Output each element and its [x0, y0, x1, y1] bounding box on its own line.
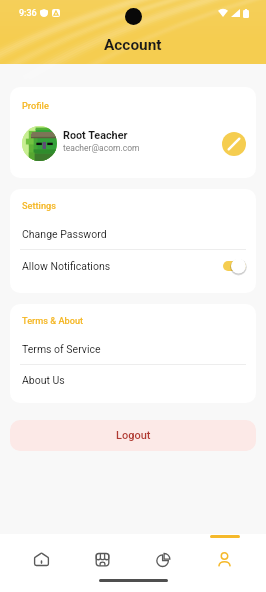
staticText: Settings [22, 200, 56, 211]
staticText: teacher@acorn.com [63, 143, 140, 153]
staticText: Change Password [22, 228, 107, 240]
button[interactable]: About Us [10, 365, 256, 395]
staticText: Terms of Service [22, 343, 101, 355]
button[interactable]: Change Password [10, 219, 256, 249]
button[interactable]: Home [11, 534, 72, 580]
staticText: Account [104, 36, 162, 54]
staticText: Root Teacher [63, 129, 128, 142]
staticText: Logout [116, 429, 151, 442]
staticText: About Us [22, 374, 65, 386]
button[interactable]: Account [194, 534, 255, 580]
staticText: Profile [22, 100, 49, 111]
button[interactable]: Edit profile [222, 132, 246, 156]
button[interactable]: Logout [10, 420, 256, 451]
button[interactable]: Allow Notifications [10, 250, 256, 282]
staticText: Terms & About [22, 315, 84, 326]
staticText: Allow Notifications [22, 260, 223, 272]
button[interactable]: Terms of Service [10, 334, 256, 364]
button[interactable]: Stats [133, 534, 194, 580]
staticText: 9:36 [19, 8, 37, 19]
button[interactable]: Store [72, 534, 133, 580]
button[interactable]: Allow Notifications [223, 258, 246, 274]
